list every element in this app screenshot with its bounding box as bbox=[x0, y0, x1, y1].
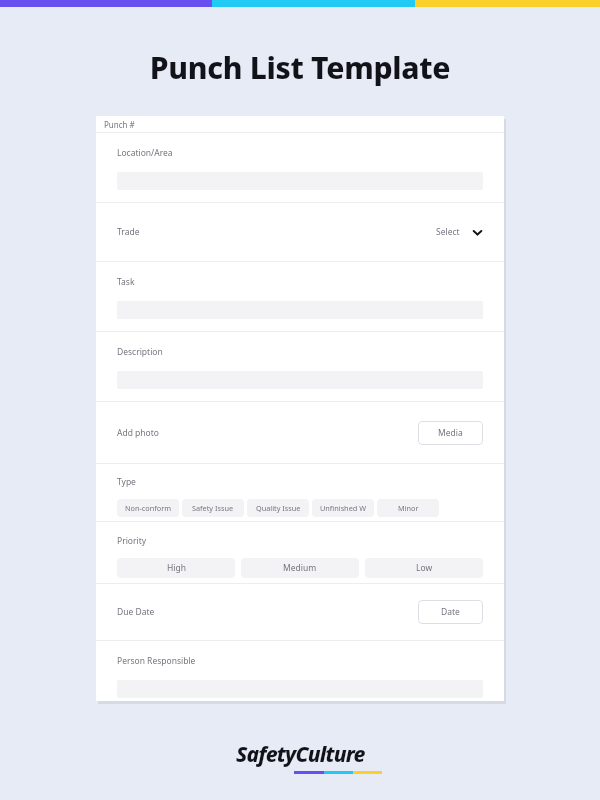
staticText: Quality Issue bbox=[256, 503, 301, 513]
button[interactable]: Priority bbox=[96, 522, 504, 583]
button[interactable]: Minor bbox=[377, 499, 439, 517]
other: Select trade bbox=[472, 227, 483, 238]
staticText: Location/Area bbox=[117, 147, 173, 159]
button[interactable]: Safety Issue bbox=[182, 499, 244, 517]
button[interactable]: Location/Area bbox=[96, 133, 504, 202]
button[interactable]: Due Date bbox=[96, 584, 504, 640]
staticText: Punch List Template bbox=[0, 47, 600, 88]
button[interactable]: High bbox=[117, 558, 235, 578]
button[interactable]: Person Responsible bbox=[96, 641, 504, 701]
staticText: Type bbox=[117, 476, 136, 488]
staticText: Non-conform bbox=[125, 503, 172, 513]
staticText: Medium bbox=[283, 562, 317, 574]
button[interactable]: Trade bbox=[96, 203, 504, 261]
button[interactable]: Type bbox=[96, 464, 504, 521]
staticText: Trade bbox=[117, 226, 140, 238]
button[interactable]: Quality Issue bbox=[247, 499, 309, 517]
staticText: Punch # bbox=[104, 119, 135, 130]
staticText: Description bbox=[117, 346, 163, 358]
staticText: Media bbox=[438, 427, 463, 439]
staticText: Task bbox=[117, 276, 135, 288]
button[interactable]: Add photo bbox=[96, 402, 504, 463]
button[interactable]: Description bbox=[96, 332, 504, 401]
staticText: Select bbox=[436, 226, 460, 238]
staticText: Person Responsible bbox=[117, 655, 196, 667]
staticText: SafetyCulture bbox=[236, 740, 365, 769]
staticText: Add photo bbox=[117, 427, 159, 439]
staticText: Due Date bbox=[117, 606, 155, 618]
button[interactable]: Pick date bbox=[418, 600, 483, 624]
staticText: Date bbox=[441, 606, 460, 618]
button[interactable]: Add media bbox=[418, 421, 483, 445]
staticText: Unfinished W bbox=[320, 503, 366, 513]
button[interactable]: Low bbox=[365, 558, 483, 578]
button[interactable]: Unfinished W bbox=[312, 499, 374, 517]
staticText: Minor bbox=[398, 503, 419, 513]
staticText: Priority bbox=[117, 535, 147, 547]
button[interactable]: Medium bbox=[241, 558, 359, 578]
staticText: Low bbox=[416, 562, 433, 574]
button[interactable]: Non-conform bbox=[117, 499, 179, 517]
staticText: High bbox=[167, 562, 186, 574]
button[interactable]: Task bbox=[96, 262, 504, 331]
staticText: Safety Issue bbox=[192, 503, 234, 513]
